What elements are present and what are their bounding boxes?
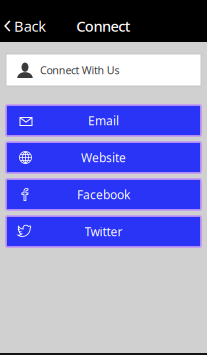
staticText: Connect With Us bbox=[40, 63, 119, 77]
button[interactable]: Connect With Us bbox=[6, 54, 201, 86]
button[interactable]: Facebook bbox=[6, 179, 201, 210]
button[interactable]: Email bbox=[6, 105, 201, 136]
staticText: Email bbox=[88, 112, 119, 128]
button[interactable]: Back bbox=[0, 10, 46, 42]
button[interactable]: Website bbox=[6, 142, 201, 173]
staticText: Website bbox=[81, 149, 126, 165]
staticText: Twitter bbox=[84, 223, 122, 239]
button[interactable]: Twitter bbox=[6, 216, 201, 247]
staticText: Connect bbox=[76, 16, 131, 36]
staticText: Facebook bbox=[77, 186, 130, 202]
staticText: Back bbox=[14, 16, 46, 36]
